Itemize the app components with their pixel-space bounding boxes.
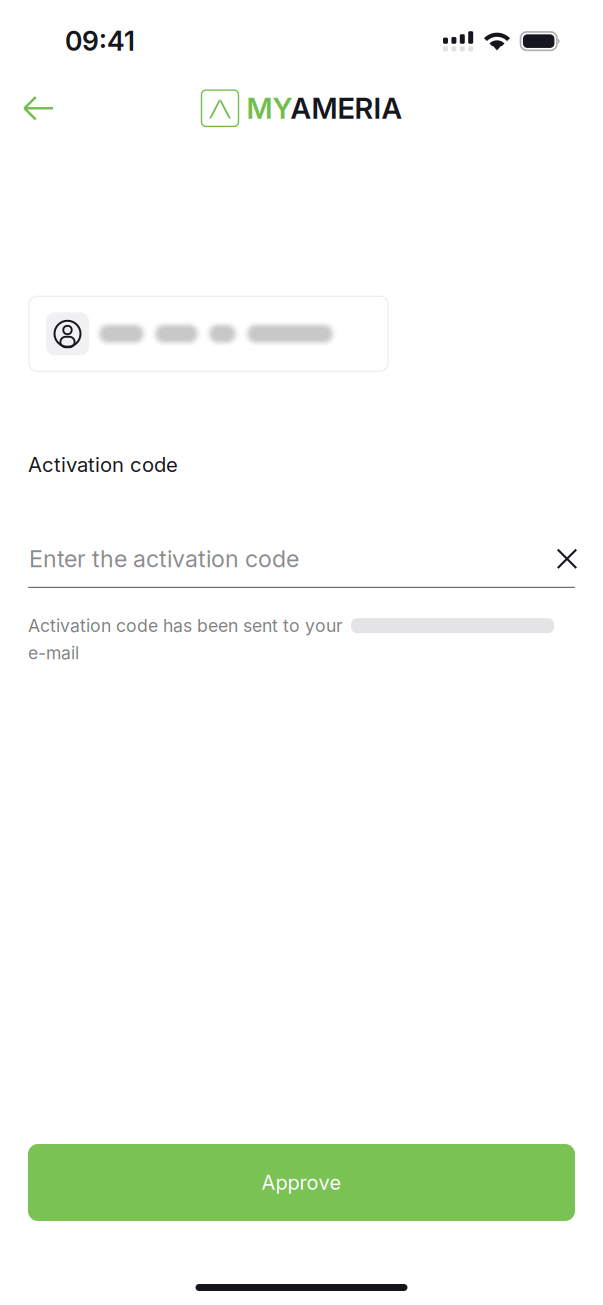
staticText: MY (246, 91, 292, 126)
button[interactable]: Clear (550, 542, 584, 576)
button[interactable] (29, 296, 388, 371)
button[interactable]: Back (7, 82, 69, 134)
staticText: Activation code (28, 452, 178, 477)
button[interactable]: Approve (28, 1144, 575, 1221)
staticText: Activation code has been sent to your (28, 615, 343, 636)
staticText: Approve (261, 1170, 341, 1195)
staticText: AMERIA (290, 91, 402, 126)
staticText: e-mail (28, 642, 79, 664)
staticText: 09:41 (65, 25, 135, 57)
staticText: Enter the activation code (29, 545, 299, 573)
